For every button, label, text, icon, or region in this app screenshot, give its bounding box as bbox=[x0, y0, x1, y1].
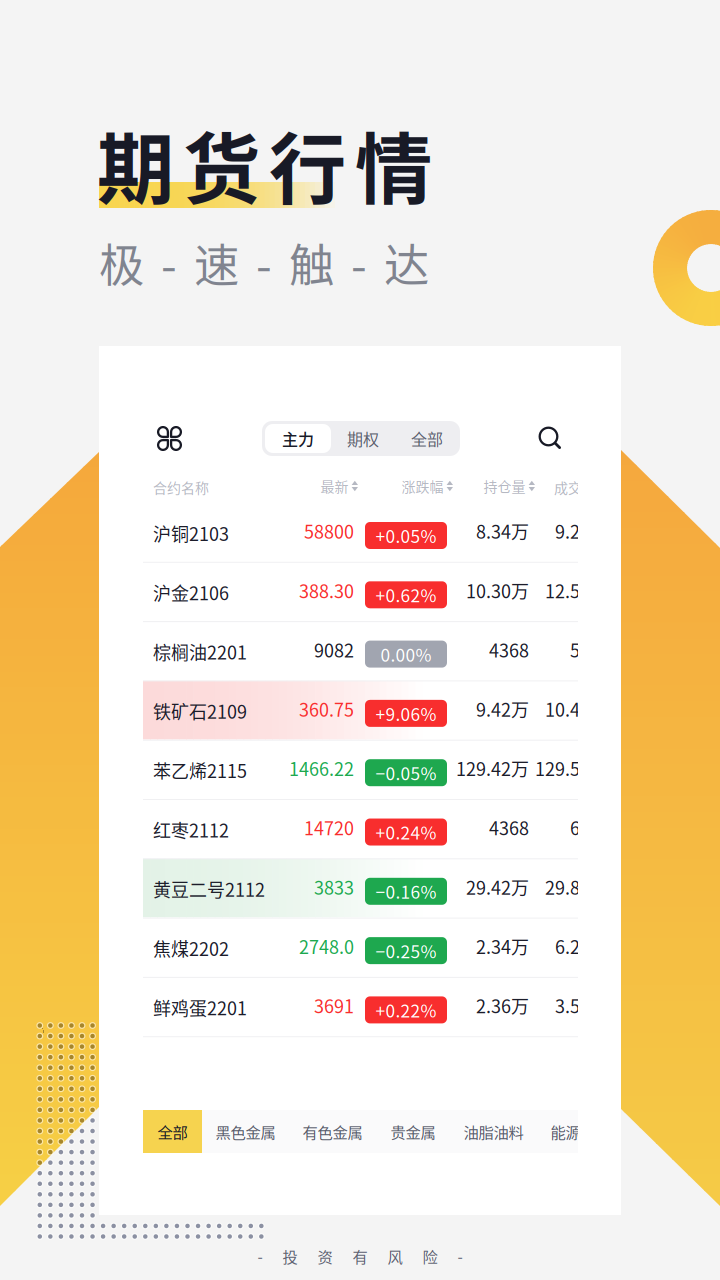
staticText: 货 bbox=[183, 108, 260, 220]
button[interactable]: 贵金属 bbox=[376, 1110, 450, 1153]
staticText: 合约名称 bbox=[153, 477, 209, 497]
staticText: 能源化工 bbox=[550, 1120, 610, 1143]
staticText: 资 bbox=[317, 1245, 332, 1267]
staticText: +0.22% bbox=[375, 997, 436, 1022]
staticText: 触 bbox=[289, 230, 334, 295]
button[interactable]: 黑色金属 bbox=[202, 1110, 289, 1153]
staticText: 速 bbox=[194, 230, 239, 295]
staticText: 12.5 bbox=[545, 577, 580, 603]
staticText: 9.42万 bbox=[476, 696, 529, 722]
staticText: 58800 bbox=[304, 518, 354, 544]
staticText: 9082 bbox=[314, 637, 354, 663]
staticText: 风 bbox=[387, 1245, 402, 1267]
staticText: 黄豆二号2112 bbox=[153, 876, 265, 902]
staticText: 360.75 bbox=[299, 696, 354, 722]
staticText: 期 bbox=[97, 108, 174, 220]
staticText: +0.05% bbox=[375, 523, 436, 548]
staticText: 4368 bbox=[489, 814, 529, 841]
staticText: 铁矿石2109 bbox=[153, 698, 247, 724]
staticText: 2.36万 bbox=[476, 992, 529, 1018]
staticText: 3833 bbox=[314, 874, 354, 900]
staticText: −0.16% bbox=[375, 879, 436, 904]
staticText: 成交量 bbox=[554, 477, 596, 497]
staticText: 3.5 bbox=[555, 992, 580, 1018]
staticText: 贵金属 bbox=[390, 1120, 435, 1143]
staticText: 有 bbox=[352, 1245, 367, 1267]
button[interactable]: 有色金属 bbox=[289, 1110, 376, 1153]
staticText: - bbox=[161, 230, 177, 295]
staticText: 2.34万 bbox=[476, 933, 529, 959]
staticText: 14720 bbox=[304, 814, 354, 841]
button[interactable]: 搜索 bbox=[539, 427, 561, 449]
staticText: 29.8 bbox=[545, 874, 580, 900]
staticText: 红枣2112 bbox=[153, 816, 229, 843]
staticText: 苯乙烯2115 bbox=[153, 757, 247, 783]
staticText: 油脂油料 bbox=[463, 1120, 523, 1143]
staticText: 极 bbox=[99, 230, 144, 295]
staticText: 情 bbox=[355, 108, 432, 220]
staticText: - bbox=[256, 230, 272, 295]
button[interactable]: 全部 bbox=[143, 1110, 202, 1153]
button[interactable]: 板块 bbox=[158, 427, 181, 450]
staticText: −0.25% bbox=[375, 938, 436, 963]
staticText: 沪金2106 bbox=[153, 579, 229, 605]
staticText: 3691 bbox=[314, 992, 354, 1018]
staticText: 10.30万 bbox=[466, 577, 529, 603]
staticText: 1466.22 bbox=[289, 755, 354, 781]
button[interactable]: 能源化工 bbox=[537, 1110, 624, 1153]
staticText: 棕榈油2201 bbox=[153, 639, 247, 665]
staticText: 2748.0 bbox=[299, 933, 354, 959]
staticText: 0.00% bbox=[380, 642, 431, 667]
staticText: 沪铜2103 bbox=[153, 520, 229, 546]
staticText: +0.24% bbox=[375, 819, 436, 845]
staticText: +0.62% bbox=[375, 582, 436, 607]
staticText: 鲜鸡蛋2201 bbox=[153, 994, 247, 1020]
staticText: - bbox=[351, 230, 367, 295]
button[interactable]: 主力 bbox=[263, 424, 331, 453]
staticText: 期权 bbox=[347, 427, 379, 450]
staticText: - bbox=[457, 1245, 462, 1267]
staticText: 全部 bbox=[411, 427, 443, 450]
button[interactable]: 全部 bbox=[395, 424, 459, 453]
staticText: 29.42万 bbox=[466, 874, 529, 900]
staticText: 10.4 bbox=[545, 696, 580, 722]
staticText: 主力 bbox=[282, 427, 314, 450]
staticText: 388.30 bbox=[299, 577, 354, 603]
staticText: 6 bbox=[570, 814, 580, 841]
staticText: 5 bbox=[570, 637, 580, 663]
staticText: 129.42万 bbox=[456, 755, 529, 781]
staticText: 4368 bbox=[489, 637, 529, 663]
staticText: 129.5 bbox=[535, 755, 580, 781]
staticText: −0.05% bbox=[375, 760, 436, 785]
staticText: - bbox=[257, 1245, 262, 1267]
button[interactable]: 期权 bbox=[331, 424, 395, 453]
staticText: +9.06% bbox=[375, 701, 436, 726]
staticText: 8.34万 bbox=[476, 518, 529, 544]
staticText: 险 bbox=[422, 1245, 437, 1267]
staticText: 6.2 bbox=[555, 933, 580, 959]
staticText: 焦煤2202 bbox=[153, 935, 229, 961]
staticText: 持仓量 bbox=[484, 476, 526, 496]
staticText: 有色金属 bbox=[302, 1120, 362, 1143]
staticText: 9.2 bbox=[555, 518, 580, 544]
button[interactable]: 油脂油料 bbox=[450, 1110, 537, 1153]
staticText: 涨跌幅 bbox=[402, 476, 444, 496]
staticText: 最新 bbox=[321, 476, 349, 496]
staticText: 达 bbox=[384, 230, 429, 295]
staticText: 黑色金属 bbox=[215, 1120, 275, 1143]
staticText: 行 bbox=[269, 108, 346, 220]
staticText: 全部 bbox=[157, 1120, 187, 1143]
staticText: 投 bbox=[282, 1245, 297, 1267]
